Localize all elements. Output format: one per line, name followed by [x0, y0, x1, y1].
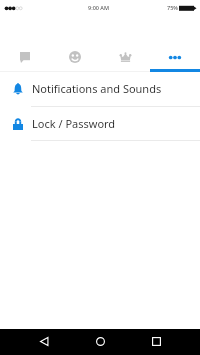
button[interactable]: Chats	[0, 40, 50, 74]
button[interactable]: Home	[88, 331, 112, 351]
staticText: 75%	[167, 4, 178, 11]
staticText: 9:00 AM	[88, 4, 110, 11]
button[interactable]: Back	[32, 331, 56, 351]
button[interactable]: Recents	[144, 331, 168, 351]
button[interactable]: Lock / Password	[0, 107, 200, 140]
staticText: Notifications and Sounds	[32, 81, 162, 96]
button[interactable]: Notifications and Sounds	[0, 71, 200, 106]
button[interactable]: More	[150, 40, 200, 74]
button[interactable]: Moods	[50, 40, 100, 74]
button[interactable]: Premium	[100, 40, 150, 74]
staticText: Lock / Password	[32, 116, 116, 131]
